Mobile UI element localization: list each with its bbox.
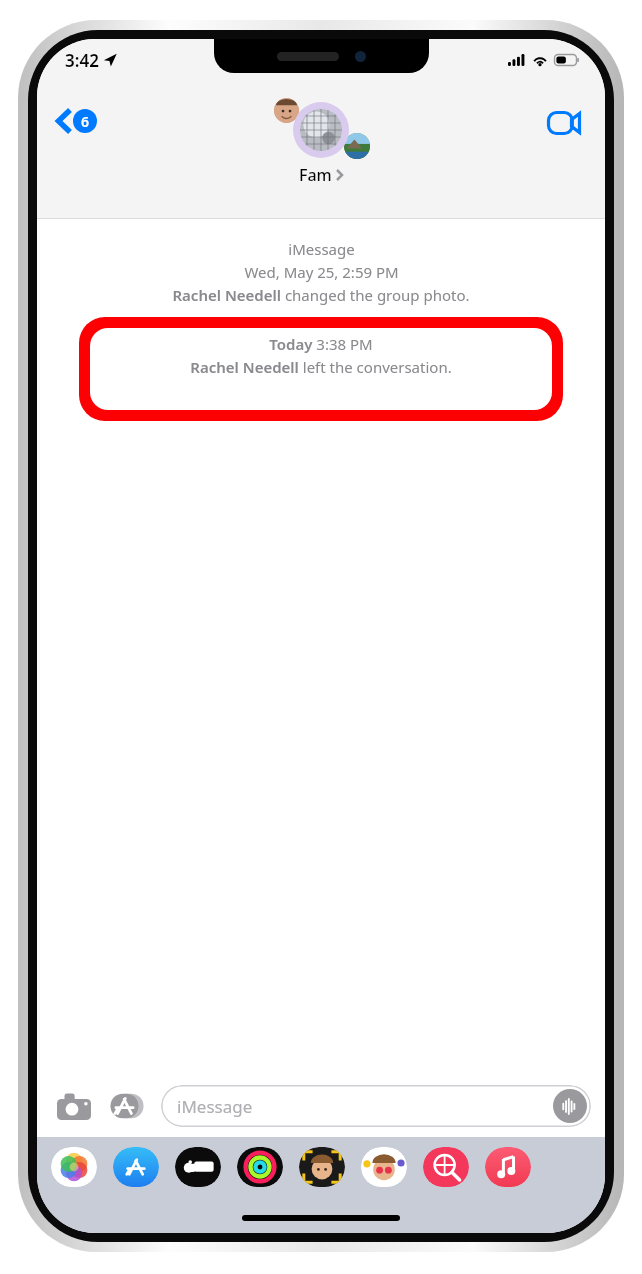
button[interactable]: Fam — [260, 97, 382, 186]
button[interactable]: iMessage app — [299, 1147, 345, 1187]
button[interactable]: iMessage app — [113, 1147, 159, 1187]
button[interactable]: iMessage apps — [107, 1086, 147, 1126]
button[interactable]: iMessage app — [237, 1147, 283, 1187]
button[interactable]: Back, 6 unread — [49, 103, 105, 139]
staticText: 6 — [81, 112, 90, 131]
button[interactable]: iMessage — [161, 1085, 591, 1127]
staticText: iMessage — [177, 1095, 253, 1118]
staticText: iMessage — [288, 239, 355, 259]
staticText: Today 3:38 PM — [269, 334, 373, 354]
button[interactable]: iMessage app — [485, 1147, 531, 1187]
button[interactable]: Camera — [53, 1089, 95, 1124]
button[interactable]: iMessage app — [423, 1147, 469, 1187]
staticText: Fam — [299, 164, 332, 186]
staticText: Rachel Needell changed the group photo. — [172, 285, 470, 305]
button[interactable]: FaceTime video call — [541, 105, 587, 141]
staticText: Rachel Needell left the conversation. — [190, 357, 452, 377]
staticText: 3:42 — [65, 49, 99, 72]
button[interactable]: Record audio message — [553, 1089, 587, 1123]
staticText: Wed, May 25, 2:59 PM — [244, 262, 399, 282]
button[interactable]: iMessage app — [51, 1147, 97, 1187]
button[interactable]: iMessage app — [175, 1147, 221, 1187]
button[interactable]: iMessage app — [361, 1147, 407, 1187]
